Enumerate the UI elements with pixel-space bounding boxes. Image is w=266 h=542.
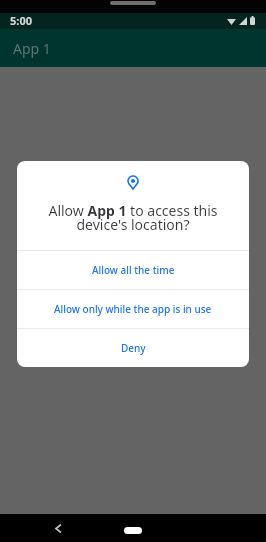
staticText: Deny <box>121 341 146 355</box>
staticText: Allow only while the app is in use <box>54 302 212 316</box>
staticText: 5:00 <box>10 13 32 28</box>
button[interactable] <box>55 524 61 533</box>
staticText: App 1 <box>13 39 51 58</box>
button[interactable]: Allow only while the app is in use <box>17 290 249 328</box>
button[interactable]: Deny <box>17 329 249 367</box>
button[interactable]: Allow all the time <box>17 251 249 289</box>
staticText: Allow App 1 to access this device's loca… <box>17 201 249 234</box>
staticText: Allow all the time <box>92 263 175 277</box>
button[interactable] <box>124 527 142 534</box>
